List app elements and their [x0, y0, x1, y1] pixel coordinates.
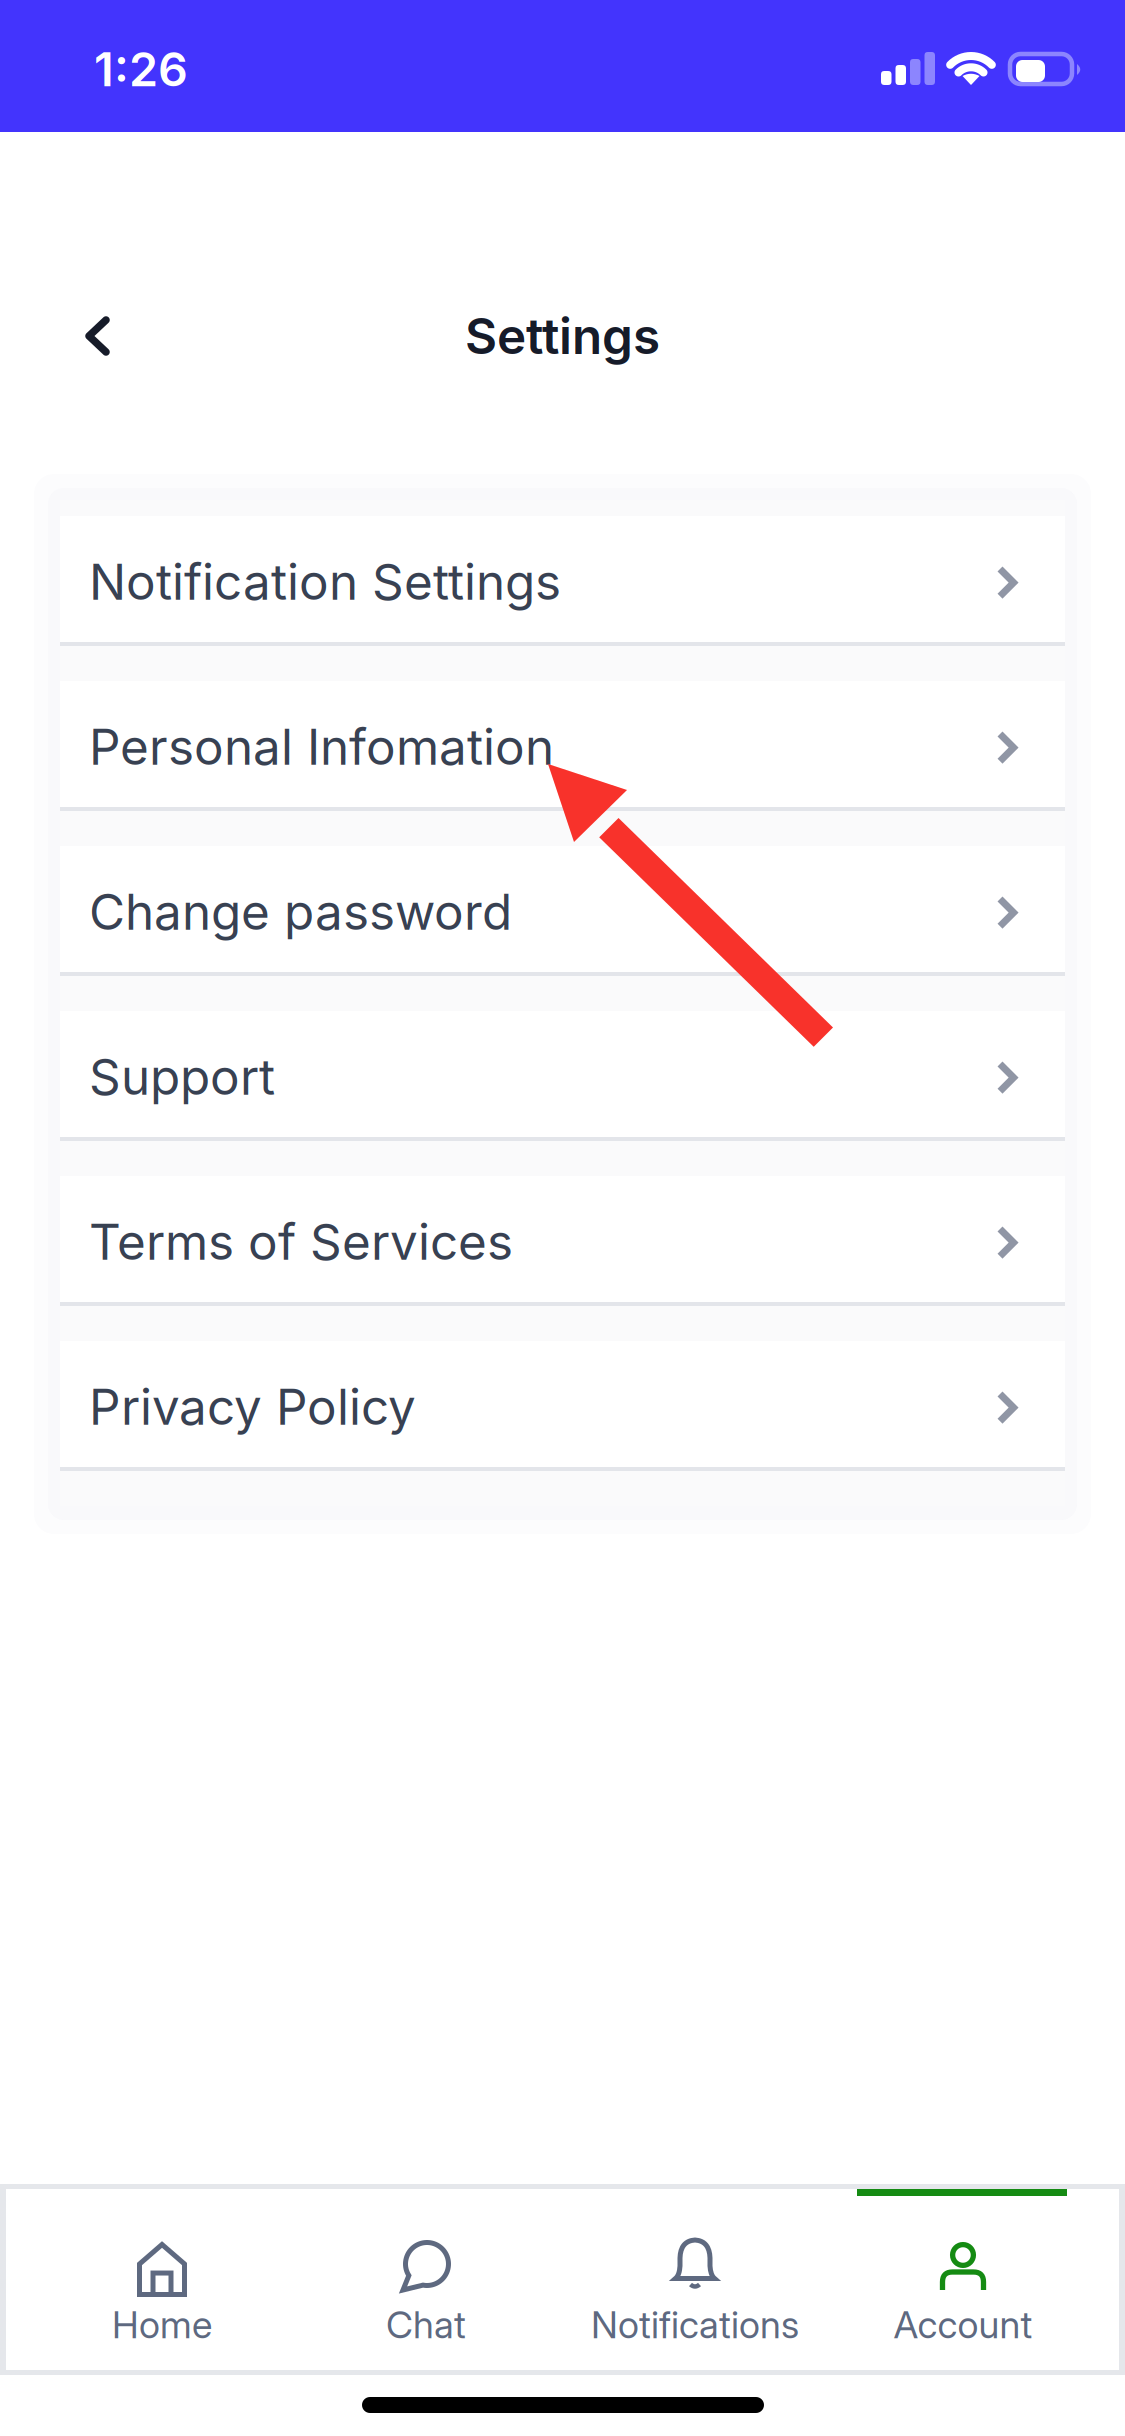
button[interactable]: Notifications	[556, 2189, 834, 2370]
button[interactable]: Chat	[287, 2189, 565, 2370]
button[interactable]: Back	[62, 284, 166, 388]
button[interactable]: Change password	[60, 846, 1065, 972]
button[interactable]: Account	[824, 2189, 1102, 2370]
button[interactable]: Personal Infomation	[60, 681, 1065, 807]
staticText: Terms of Services	[89, 1212, 513, 1272]
staticText: Settings	[465, 306, 660, 366]
staticText: Home	[112, 2302, 212, 2347]
staticText: Personal Infomation	[89, 717, 554, 777]
button[interactable]: Notification Settings	[60, 516, 1065, 642]
staticText: Notifications	[591, 2302, 799, 2347]
staticText: Change password	[89, 882, 512, 942]
staticText: 1:26	[94, 41, 188, 97]
button[interactable]: Privacy Policy	[60, 1341, 1065, 1467]
button[interactable]: Home	[23, 2189, 301, 2370]
staticText: Chat	[386, 2302, 466, 2347]
staticText: Support	[89, 1047, 275, 1107]
button[interactable]: Support	[60, 1011, 1065, 1137]
staticText: Account	[893, 2302, 1032, 2347]
staticText: Notification Settings	[89, 552, 561, 612]
button[interactable]: Terms of Services	[60, 1176, 1065, 1302]
staticText: Privacy Policy	[89, 1377, 416, 1437]
